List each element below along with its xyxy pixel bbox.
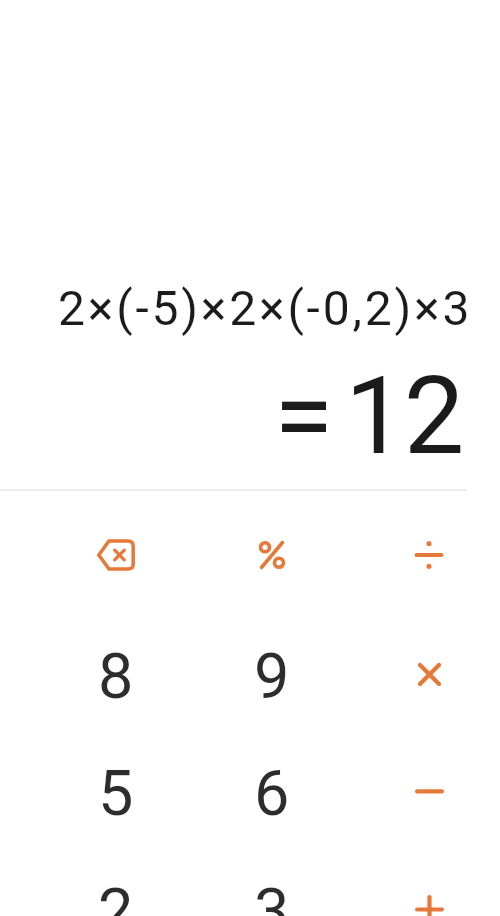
button[interactable]: 5: [61, 736, 171, 846]
staticText: 2×(-5)×2×(-0,2)×3: [58, 280, 473, 336]
button[interactable]: [217, 500, 327, 610]
staticText: 2: [98, 875, 134, 916]
staticText: 8: [98, 640, 134, 714]
button[interactable]: [61, 500, 171, 610]
staticText: 6: [254, 757, 290, 831]
button[interactable]: [374, 736, 484, 846]
button[interactable]: 3: [217, 854, 327, 916]
button[interactable]: [374, 619, 484, 729]
button[interactable]: 9: [217, 619, 327, 729]
staticText: =: [274, 353, 334, 480]
staticText: 12: [345, 353, 463, 480]
button[interactable]: 6: [217, 736, 327, 846]
staticText: 5: [98, 757, 134, 831]
button[interactable]: [374, 854, 484, 916]
button[interactable]: [374, 500, 484, 610]
button[interactable]: 8: [61, 619, 171, 729]
button[interactable]: 2: [61, 854, 171, 916]
staticText: 9: [254, 640, 290, 714]
staticText: 3: [254, 875, 290, 916]
